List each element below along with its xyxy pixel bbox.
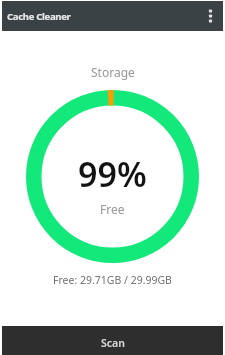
staticText: Free: 29.71GB / 29.99GB [53,273,172,287]
staticText: Free [100,201,125,217]
staticText: 99% [78,151,147,197]
staticText: Cache Cleaner [7,10,71,23]
staticText: Scan [101,336,125,350]
button[interactable]: More options [193,1,223,31]
button[interactable]: Scan [2,326,223,355]
staticText: Storage [91,64,135,80]
